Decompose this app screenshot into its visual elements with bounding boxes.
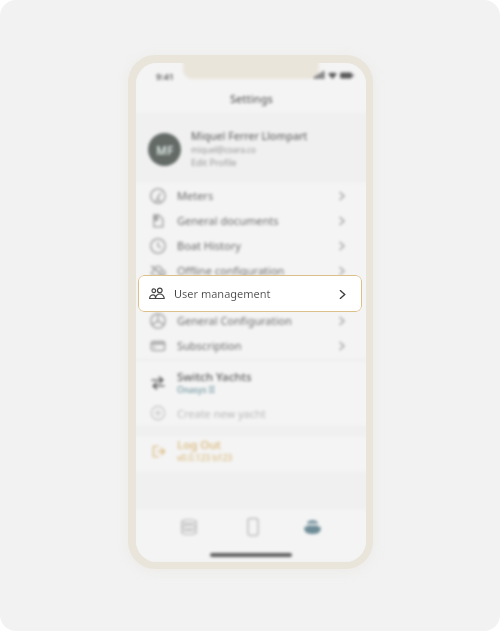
button[interactable]: Devices: [244, 518, 262, 536]
button[interactable]: Switch Yachts: [136, 368, 366, 398]
staticText: v0.0.123 b123: [177, 452, 233, 464]
button[interactable]: Data: [181, 519, 197, 535]
staticText: Meters: [177, 188, 336, 203]
button[interactable]: Boat History: [136, 233, 366, 258]
staticText: Switch Yachts: [177, 369, 252, 385]
staticText: User management: [177, 288, 336, 303]
button[interactable]: Offline configuration: [136, 258, 366, 283]
staticText: Edit Profile: [191, 156, 237, 168]
button[interactable]: Subscription: [136, 333, 366, 358]
staticText: Subscription: [177, 338, 336, 353]
button[interactable]: General Configuration: [136, 308, 366, 333]
staticText: General Configuration: [177, 313, 336, 328]
staticText: Log Out: [177, 437, 221, 453]
button[interactable]: Meters: [136, 183, 366, 208]
staticText: General documents: [177, 213, 336, 228]
staticText: User management: [174, 286, 336, 301]
button[interactable]: Boat: [304, 519, 321, 536]
staticText: Boat History: [177, 238, 336, 253]
staticText: MF: [156, 142, 174, 158]
staticText: 9:41: [156, 70, 174, 82]
button[interactable]: General documents: [136, 208, 366, 233]
button[interactable]: Create new yacht: [136, 400, 366, 426]
staticText: Onasys II: [177, 384, 215, 396]
staticText: Create new yacht: [177, 406, 266, 421]
staticText: Miquel Ferrer Llompart: [191, 129, 308, 143]
button[interactable]: User management: [138, 275, 362, 312]
button[interactable]: Log Out: [136, 435, 366, 467]
button[interactable]: User management: [136, 283, 366, 308]
staticText: Settings: [230, 91, 273, 106]
staticText: Offline configuration: [177, 263, 336, 278]
staticText: miquel@coara.co: [191, 144, 256, 155]
